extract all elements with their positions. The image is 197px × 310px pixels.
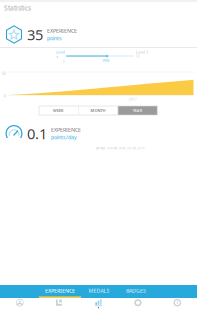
staticText: BADGES xyxy=(126,287,146,294)
button[interactable]: MONTH xyxy=(79,106,118,115)
button[interactable]: Journal xyxy=(39,298,79,310)
staticText: Level 1 xyxy=(56,49,65,60)
staticText: 50 xyxy=(1,71,5,76)
staticText: MONTH xyxy=(91,108,106,113)
staticText: EXPERIENCE xyxy=(47,27,77,34)
staticText: average increase since 28 Oct 2016 xyxy=(96,146,145,150)
staticText: 0 xyxy=(3,93,5,98)
staticText: 70% xyxy=(102,58,109,63)
button[interactable]: Profile xyxy=(0,298,39,310)
button[interactable]: BADGES xyxy=(117,285,155,298)
staticText: MEDALS xyxy=(88,287,109,294)
staticText: WEEK xyxy=(53,108,64,113)
staticText: 0.1 xyxy=(27,124,47,143)
button[interactable]: Info xyxy=(158,298,197,310)
button[interactable]: Statistics xyxy=(79,298,118,310)
staticText: Level 2 xyxy=(136,49,148,55)
staticText: 0 xyxy=(63,60,65,63)
staticText: points/day xyxy=(51,134,77,141)
button[interactable]: MEDALS xyxy=(81,285,117,298)
staticText: EXPERIENCE xyxy=(45,287,75,294)
button[interactable]: WEEK xyxy=(39,106,78,115)
staticText: EXPERIENCE xyxy=(51,126,81,133)
button[interactable]: EXPERIENCE xyxy=(39,285,81,298)
staticText: 35 xyxy=(27,25,43,44)
button[interactable]: YEAR xyxy=(118,106,157,115)
staticText: points xyxy=(47,35,62,42)
button[interactable]: Settings xyxy=(118,298,158,310)
staticText: 50 xyxy=(136,55,140,58)
staticText: Statistics xyxy=(4,4,31,12)
staticText: YEAR xyxy=(133,108,143,113)
staticText: 2017 xyxy=(129,98,137,101)
